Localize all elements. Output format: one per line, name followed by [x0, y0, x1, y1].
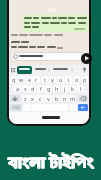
button[interactable]: e: [26, 76, 33, 83]
staticText: l: [80, 85, 82, 92]
staticText: v: [47, 95, 50, 102]
button[interactable]: v: [45, 95, 52, 102]
staticText: e: [28, 76, 32, 83]
staticText: বাংলা টাইপিং: [8, 153, 94, 174]
button[interactable]: x: [29, 95, 36, 102]
button[interactable]: d: [29, 85, 36, 92]
staticText: m: [70, 95, 76, 102]
button[interactable]: [81, 53, 92, 64]
staticText: k: [71, 85, 74, 92]
button[interactable]: h: [53, 85, 60, 92]
button[interactable]: t: [41, 76, 48, 83]
staticText: বাংলা টাইপিং: [9, 153, 95, 174]
button[interactable]: s: [22, 85, 29, 92]
button[interactable]: i: [65, 76, 72, 83]
button[interactable]: [78, 104, 88, 111]
staticText: n: [63, 95, 67, 102]
button[interactable]: m: [69, 95, 76, 102]
button[interactable]: a: [14, 85, 21, 92]
staticText: f: [40, 85, 42, 92]
staticText: t: [44, 76, 46, 83]
button[interactable]: z: [22, 95, 29, 102]
button[interactable]: l: [77, 85, 84, 92]
staticText: g: [47, 85, 51, 92]
staticText: a: [16, 85, 20, 92]
button[interactable]: b: [53, 95, 60, 102]
staticText: z: [24, 95, 27, 102]
button[interactable]: [78, 95, 88, 102]
button[interactable]: w: [18, 76, 25, 83]
staticText: ?123: [13, 106, 20, 110]
button[interactable]: f: [37, 85, 44, 92]
button[interactable]: r: [33, 76, 40, 83]
staticText: r: [35, 76, 38, 83]
staticText: p: [83, 76, 87, 83]
button[interactable]: o: [73, 76, 80, 83]
button[interactable]: [10, 95, 20, 102]
button[interactable]: q: [10, 76, 17, 83]
staticText: q: [12, 76, 16, 83]
staticText: x: [31, 95, 34, 102]
staticText: j: [64, 85, 66, 92]
button[interactable]: k: [69, 85, 76, 92]
button[interactable]: [17, 66, 32, 74]
button[interactable]: p: [81, 76, 88, 83]
staticText: h: [55, 85, 59, 92]
staticText: u: [59, 76, 63, 83]
staticText: d: [31, 85, 35, 92]
button[interactable]: ?123: [10, 104, 22, 111]
button[interactable]: y: [49, 76, 56, 83]
button[interactable]: বাংলা টাইপিং: [0, 145, 101, 180]
staticText: i: [68, 76, 70, 83]
staticText: বাংলা টাইপিং: [8, 153, 94, 174]
staticText: w: [19, 76, 24, 83]
button[interactable]: j: [61, 85, 68, 92]
button[interactable]: n: [61, 95, 68, 102]
staticText: o: [75, 76, 79, 83]
button[interactable]: u: [57, 76, 64, 83]
button[interactable]: [10, 52, 88, 61]
staticText: s: [24, 85, 27, 92]
staticText: y: [51, 76, 54, 83]
button[interactable]: g: [45, 85, 52, 92]
staticText: b: [55, 95, 59, 102]
button[interactable]: [22, 15, 89, 32]
staticText: c: [39, 95, 42, 102]
button[interactable]: c: [37, 95, 44, 102]
